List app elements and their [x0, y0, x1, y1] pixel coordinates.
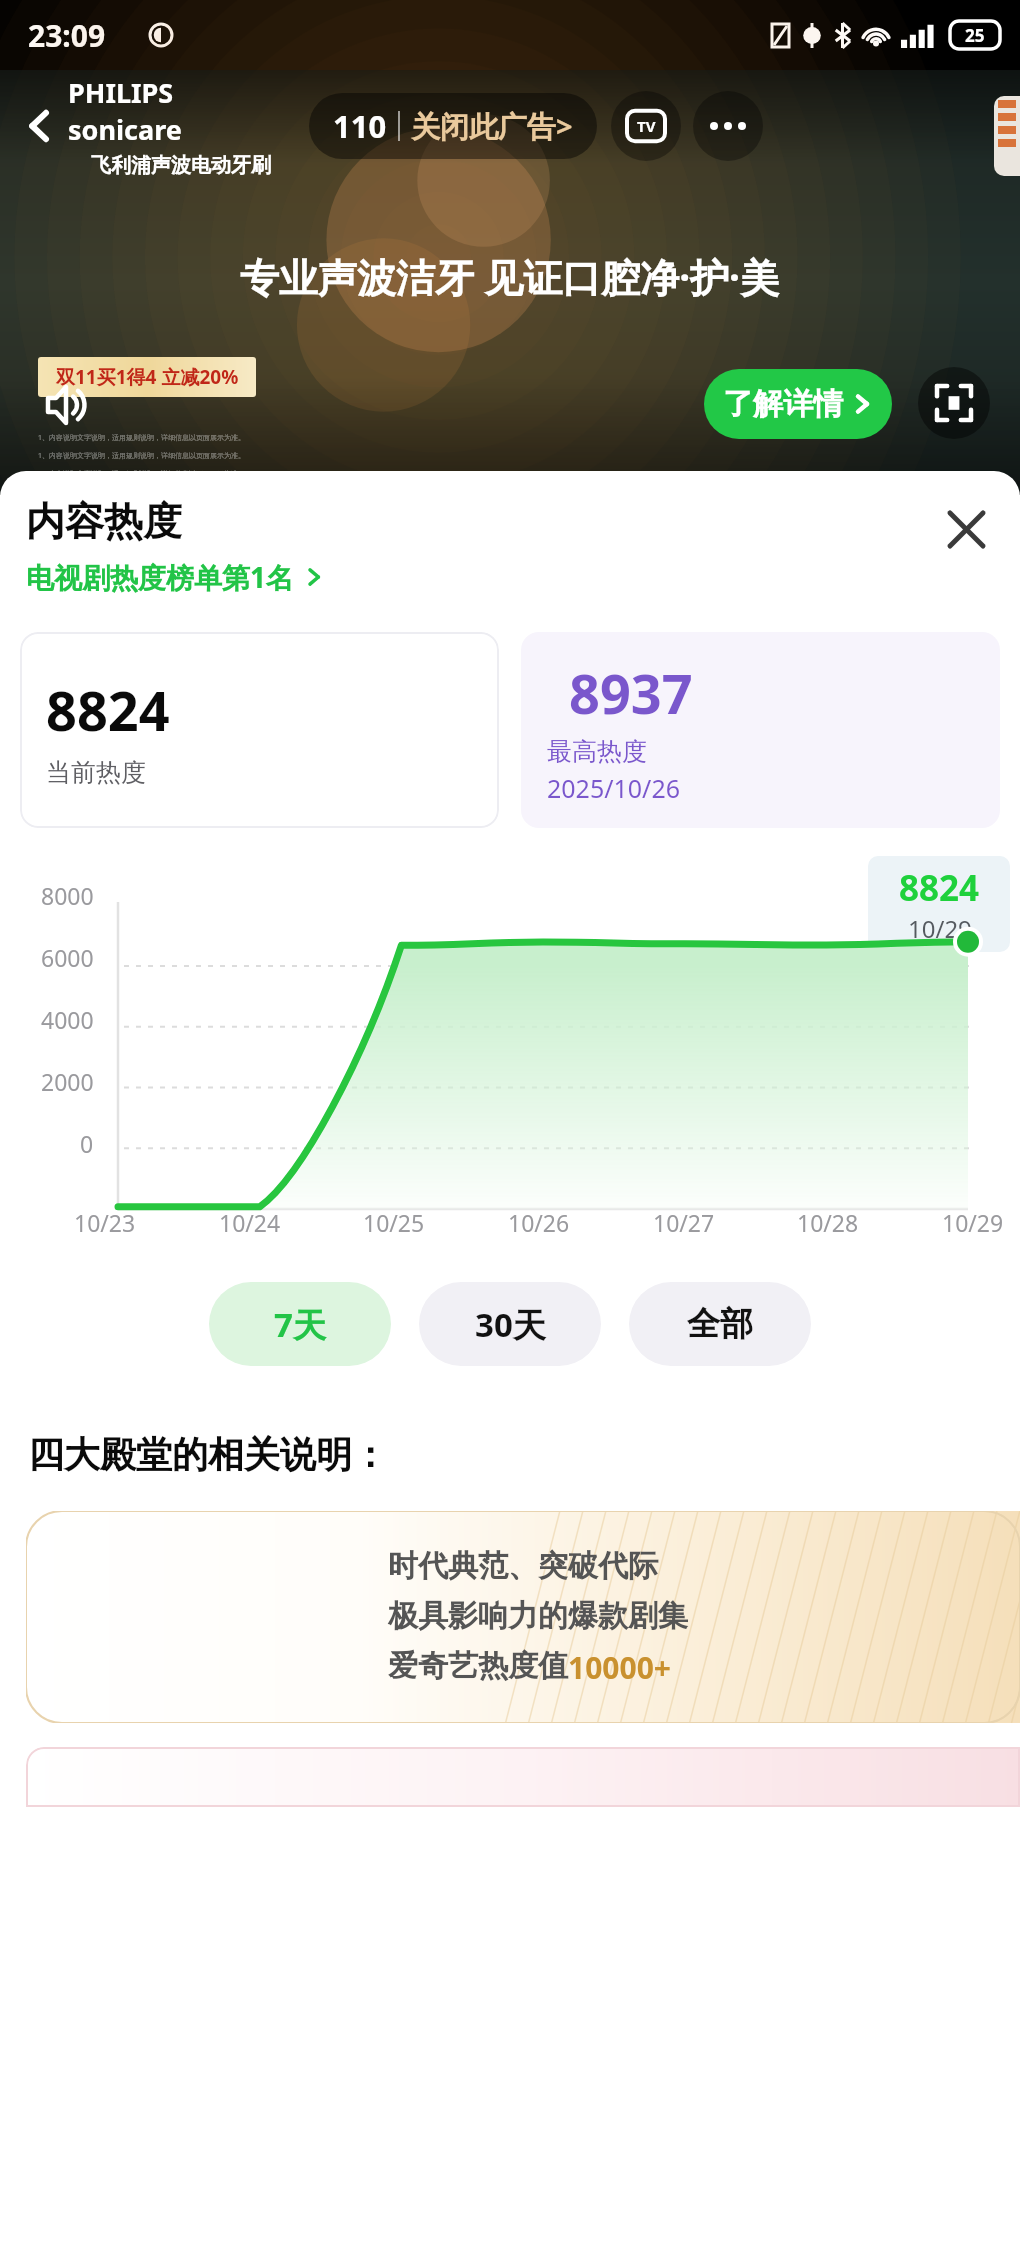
staticText: 最高热度	[547, 736, 647, 767]
staticText: 4000	[41, 1004, 94, 1035]
staticText: 8000	[41, 880, 94, 911]
staticText: 1、内容说明文字说明，适用规则说明，详细信息以页面展示为准。	[38, 433, 246, 443]
button[interactable]: 全部	[629, 1282, 811, 1366]
staticText: 10/29	[942, 1207, 1004, 1238]
staticText: 当前热度	[46, 757, 146, 788]
button[interactable]: 时代典范、突破代际	[26, 1511, 1020, 1723]
staticText: 110	[333, 105, 387, 147]
staticText: 10/28	[797, 1207, 859, 1238]
staticText: 1、内容说明文字说明，适用规则说明，详细信息以页面展示为准。	[38, 451, 246, 461]
staticText: 10/26	[508, 1207, 570, 1238]
button[interactable]: 8824	[20, 632, 499, 828]
staticText: 四大殿堂的相关说明：	[28, 1432, 388, 1477]
button[interactable]: Sound	[40, 377, 96, 433]
staticText: 全部	[687, 1303, 753, 1345]
staticText: 内容热度	[26, 497, 182, 546]
staticText: 10/27	[653, 1207, 715, 1238]
staticText: 8824	[899, 864, 980, 912]
staticText: 2000	[41, 1066, 94, 1097]
staticText: 10000+	[568, 1647, 671, 1688]
staticText: 25	[965, 24, 985, 47]
staticText: 电视剧热度榜单第1名	[26, 558, 295, 596]
staticText: 8937	[569, 656, 693, 730]
staticText: 10/24	[219, 1207, 281, 1238]
staticText: 双11买1得4 立减20%	[56, 364, 239, 390]
staticText: 时代典范、突破代际	[388, 1547, 658, 1585]
button[interactable]: More options	[693, 91, 763, 161]
staticText: 10/29	[908, 912, 972, 945]
staticText: 7天	[274, 1302, 326, 1347]
button[interactable]: 110	[309, 93, 597, 159]
button[interactable]: Back	[12, 98, 68, 154]
staticText: 了解详情	[723, 385, 843, 423]
staticText: TV	[637, 116, 656, 136]
staticText: 10/23	[74, 1207, 136, 1238]
staticText: 10/25	[363, 1207, 425, 1238]
staticText: 爱奇艺热度值	[388, 1647, 568, 1685]
staticText: 8824	[46, 673, 170, 747]
button[interactable]: 7天	[209, 1282, 391, 1366]
button[interactable]: 电视剧热度榜单第1名	[26, 558, 324, 596]
staticText: 关闭此广告>	[411, 106, 573, 146]
staticText: 6000	[41, 942, 94, 973]
staticText: 极具影响力的爆款剧集	[388, 1597, 688, 1635]
button[interactable]: TV mode	[611, 91, 681, 161]
staticText: 2025/10/26	[547, 771, 681, 805]
staticText: 0	[80, 1128, 94, 1159]
button[interactable]: 30天	[419, 1282, 601, 1366]
staticText: 23:09	[28, 15, 106, 56]
staticText: 专业声波洁牙 见证口腔净·护·美	[240, 250, 780, 303]
staticText: 1、内容说明文字说明，适用规则说明，详细信息以页面展示为准。	[38, 469, 246, 479]
staticText: PHILIPS sonicare	[68, 74, 293, 148]
button[interactable]: Close	[938, 501, 994, 557]
button[interactable]: 了解详情	[704, 369, 892, 439]
staticText: 30天	[475, 1302, 546, 1347]
button[interactable]: 8937	[521, 632, 1000, 828]
button[interactable]: Fullscreen	[918, 367, 990, 439]
staticText: 飞利浦声波电动牙刷	[91, 153, 271, 178]
